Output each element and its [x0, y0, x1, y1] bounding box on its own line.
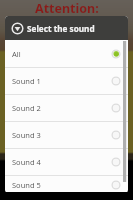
staticText: Sound 2 — [12, 103, 41, 113]
button[interactable]: All — [5, 40, 128, 67]
staticText: Sound 5 — [12, 180, 41, 190]
button[interactable]: Sound 5 — [5, 176, 128, 193]
staticText: Attention: — [35, 0, 99, 16]
staticText: Sound 4 — [12, 157, 41, 167]
staticText: All — [12, 49, 21, 59]
staticText: Sound 3 — [12, 130, 41, 140]
staticText: Sound 1 — [12, 76, 41, 86]
button[interactable]: Sound 2 — [5, 95, 128, 121]
staticText: Select the sound — [27, 23, 95, 34]
button[interactable]: Sound 4 — [5, 149, 128, 175]
button[interactable]: Select the sound — [5, 16, 128, 40]
button[interactable]: Sound 3 — [5, 122, 128, 148]
button[interactable]: Sound 1 — [5, 68, 128, 94]
